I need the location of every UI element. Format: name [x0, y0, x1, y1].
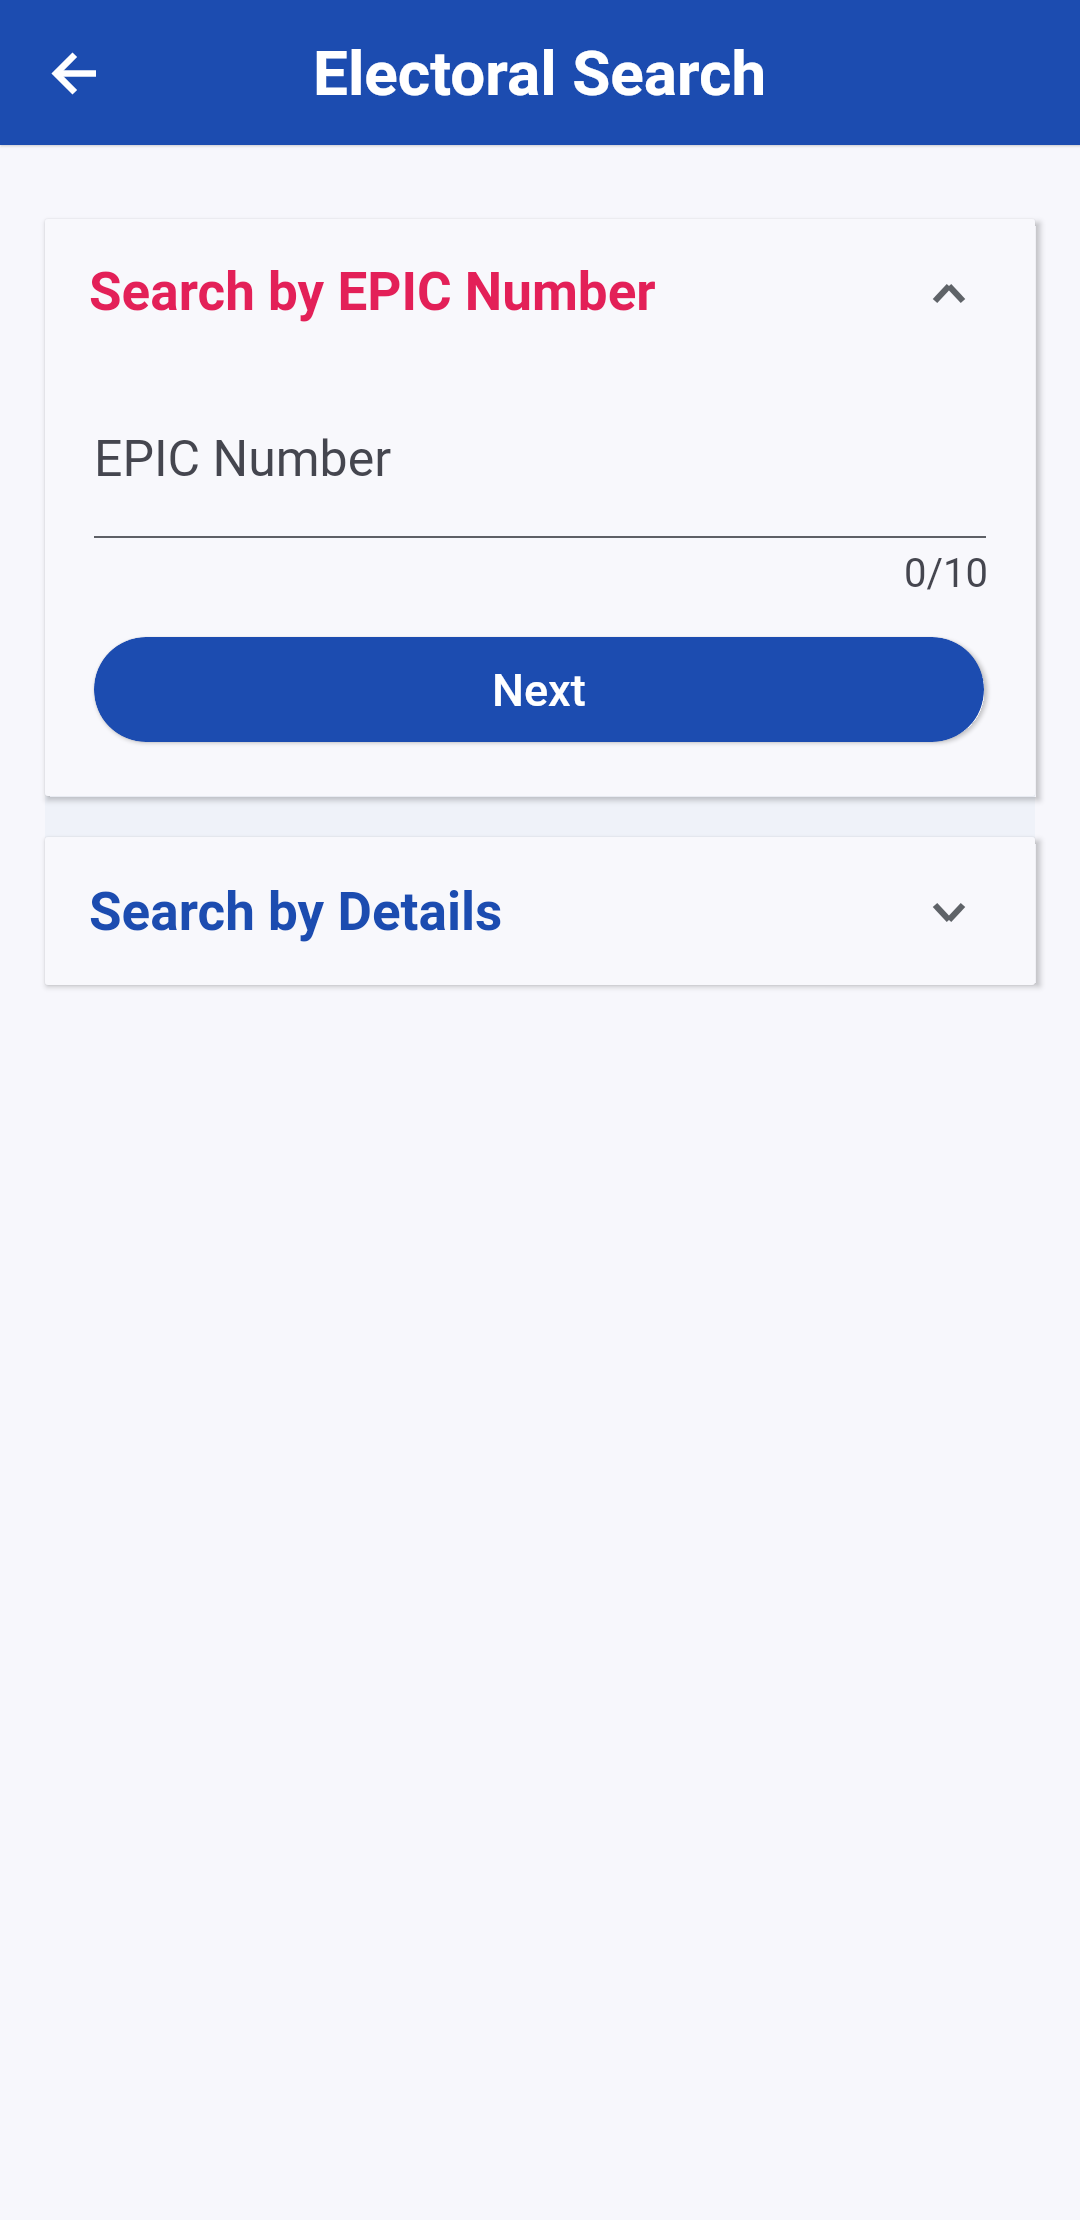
button[interactable]: Next	[94, 637, 984, 742]
button[interactable]: Search by EPIC Number	[45, 219, 1035, 365]
staticText: Search by Details	[89, 881, 503, 943]
button[interactable]: Search by Details	[45, 837, 1035, 985]
button[interactable]: Expand section	[913, 875, 985, 947]
staticText: 0/10	[45, 550, 988, 597]
button[interactable]: Collapse section	[913, 256, 985, 328]
staticText: EPIC Number	[94, 430, 392, 489]
staticText: Search by EPIC Number	[89, 261, 656, 323]
button[interactable]: Back	[28, 27, 120, 119]
staticText: Next	[492, 664, 586, 717]
staticText: Electoral Search	[313, 37, 767, 110]
